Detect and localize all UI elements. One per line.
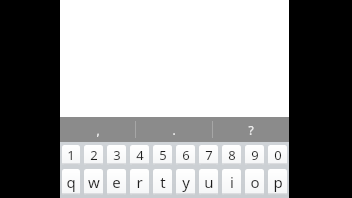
staticText: r (136, 172, 143, 192)
staticText: 3 (113, 146, 121, 164)
staticText: . (172, 122, 176, 138)
button[interactable]: y (176, 169, 195, 195)
staticText: 4 (136, 146, 144, 164)
button[interactable]: p (268, 169, 287, 195)
staticText: e (112, 172, 121, 192)
button[interactable]: e (107, 169, 126, 195)
button[interactable]: q (62, 169, 80, 195)
staticText: 2 (90, 146, 98, 164)
button[interactable]: i (222, 169, 241, 195)
staticText: w (88, 172, 100, 192)
button[interactable]: 9 (245, 145, 264, 165)
button[interactable]: 2 (84, 145, 103, 165)
button[interactable]: 4 (130, 145, 149, 165)
staticText: 5 (159, 146, 167, 164)
staticText: 9 (251, 146, 259, 164)
button[interactable]: Suggestion ? (213, 117, 289, 142)
button[interactable]: 0 (268, 145, 287, 165)
staticText: 6 (182, 146, 190, 164)
button[interactable]: r (130, 169, 149, 195)
button[interactable]: Suggestion . (136, 117, 212, 142)
button[interactable]: Suggestion , (60, 117, 135, 142)
button[interactable]: w (84, 169, 103, 195)
staticText: 7 (205, 146, 213, 164)
staticText: t (160, 172, 166, 192)
staticText: o (250, 172, 260, 192)
button[interactable]: 8 (222, 145, 241, 165)
button[interactable]: u (199, 169, 218, 195)
staticText: , (96, 122, 100, 138)
staticText: 1 (67, 146, 75, 164)
staticText: ? (248, 122, 254, 138)
button[interactable]: o (245, 169, 264, 195)
staticText: 8 (228, 146, 236, 164)
button[interactable]: 7 (199, 145, 218, 165)
staticText: 0 (274, 146, 282, 164)
button[interactable]: t (153, 169, 172, 195)
button[interactable]: 1 (62, 145, 80, 165)
staticText: q (66, 172, 76, 192)
staticText: p (273, 172, 283, 192)
staticText: y (182, 172, 190, 192)
button[interactable]: 6 (176, 145, 195, 165)
staticText: i (230, 172, 234, 192)
staticText: u (204, 172, 214, 192)
button[interactable]: 3 (107, 145, 126, 165)
button[interactable]: 5 (153, 145, 172, 165)
